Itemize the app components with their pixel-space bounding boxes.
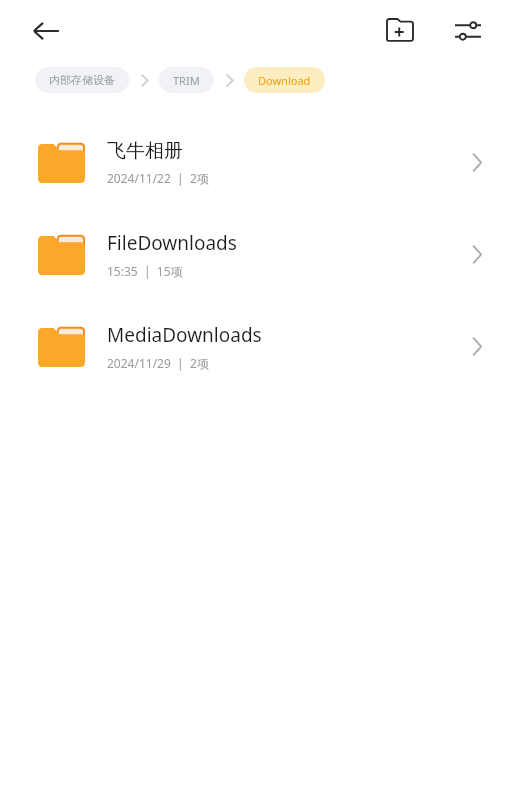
button[interactable]: 飞牛相册 [0,116,512,208]
staticText: TRIM [173,73,200,88]
staticText: 2024/11/29 | 2项 [107,355,209,371]
button[interactable]: MediaDownloads [0,300,512,392]
button[interactable]: Download [244,67,325,93]
staticText: 飞牛相册 [107,139,183,163]
staticText: 15:35 | 15项 [107,263,183,279]
staticText: Download [258,73,311,88]
staticText: 内部存储设备 [49,73,115,87]
staticText: MediaDownloads [107,322,262,348]
button[interactable]: Back [20,5,72,57]
staticText: FileDownloads [107,230,237,256]
button[interactable]: TRIM [159,67,214,93]
button[interactable]: Sort options [444,7,492,55]
staticText: 2024/11/22 | 2项 [107,170,209,186]
button[interactable]: 内部存储设备 [35,67,129,93]
button[interactable]: New folder [376,7,424,55]
button[interactable]: FileDownloads [0,208,512,300]
